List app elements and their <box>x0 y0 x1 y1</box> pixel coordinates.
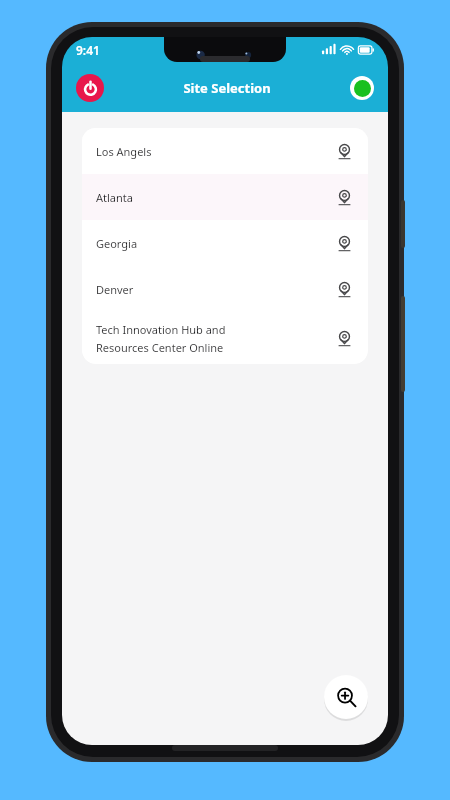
button[interactable]: Power <box>76 74 104 102</box>
staticText: 9:41 <box>76 42 100 58</box>
button[interactable]: Show on map <box>334 279 354 299</box>
staticText: Resources Center Online <box>96 340 224 355</box>
button[interactable]: Tech Innovation Hub and <box>82 312 368 364</box>
button[interactable]: Show on map <box>334 328 354 348</box>
staticText: Tech Innovation Hub and <box>96 322 226 337</box>
staticText: Georgia <box>96 236 138 251</box>
staticText: Los Angels <box>96 144 152 159</box>
button[interactable]: Show on map <box>334 141 354 161</box>
staticText: Site Selection <box>183 79 271 97</box>
button[interactable]: Los Angels <box>82 128 368 174</box>
button[interactable]: Connection status <box>350 76 374 100</box>
button[interactable]: Show on map <box>334 187 354 207</box>
button[interactable]: Atlanta <box>82 174 368 220</box>
button[interactable]: Zoom in <box>324 675 368 719</box>
button[interactable]: Show on map <box>334 233 354 253</box>
staticText: Denver <box>96 282 134 297</box>
staticText: Atlanta <box>96 190 133 205</box>
button[interactable]: Denver <box>82 266 368 312</box>
button[interactable]: Georgia <box>82 220 368 266</box>
